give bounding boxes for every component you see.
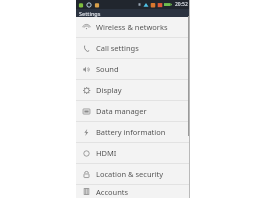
button[interactable]: Data manager [76, 101, 190, 121]
staticText: Location & security [96, 169, 164, 179]
button[interactable]: HDMI [76, 143, 190, 163]
button[interactable]: Wireless & networks [76, 17, 190, 37]
staticText: HDMI [96, 148, 117, 158]
staticText: Data manager [96, 106, 147, 116]
button[interactable]: Accounts [76, 185, 190, 198]
button[interactable]: Display [76, 80, 190, 100]
button[interactable]: Location & security [76, 164, 190, 184]
button[interactable]: Battery information [76, 122, 190, 142]
staticText: Display [96, 85, 122, 95]
staticText: Wireless & networks [96, 22, 168, 32]
staticText: Settings [79, 10, 101, 17]
button[interactable]: Call settings [76, 38, 190, 58]
button[interactable]: Sound [76, 59, 190, 79]
staticText: Battery information [96, 127, 166, 137]
staticText: Accounts [96, 187, 129, 197]
staticText: 20:52 [175, 1, 188, 8]
staticText: Call settings [96, 43, 139, 53]
staticText: Sound [96, 64, 119, 74]
